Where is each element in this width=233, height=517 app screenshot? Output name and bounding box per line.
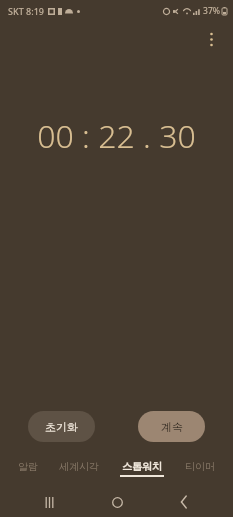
button[interactable]: Back — [166, 487, 202, 517]
staticText: 초기화 — [45, 420, 78, 434]
staticText: 알람 — [18, 460, 38, 473]
button[interactable]: 초기화 — [28, 411, 95, 442]
staticText: 스톱워치 — [122, 460, 162, 473]
staticText: 티이머 — [185, 460, 215, 473]
button[interactable]: 알람 — [14, 458, 42, 479]
button[interactable]: Home — [99, 487, 135, 517]
staticText: 37% — [203, 5, 220, 17]
staticText: 세계시각 — [59, 460, 99, 473]
button[interactable]: 세계시각 — [55, 458, 103, 479]
button[interactable]: 티이머 — [181, 458, 219, 479]
staticText: SKT 8:19 — [8, 5, 44, 17]
button[interactable]: 계속 — [138, 411, 205, 442]
staticText: 계속 — [161, 420, 183, 434]
button[interactable]: Recent apps — [31, 487, 67, 517]
button[interactable]: 스톱워치 — [116, 458, 168, 479]
button[interactable]: More options — [197, 25, 225, 53]
staticText: 00 : 22 . 30 — [37, 114, 196, 158]
